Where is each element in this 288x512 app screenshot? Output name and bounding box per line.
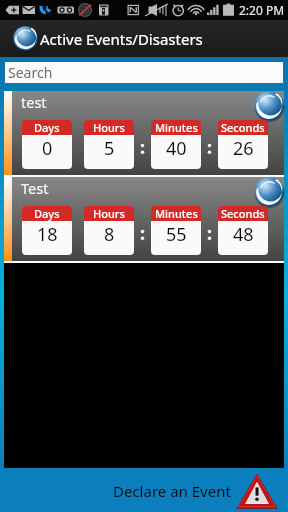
staticText: 0 <box>42 136 53 161</box>
staticText: Active Events/Disasters <box>40 29 203 49</box>
other: Declare an Event <box>236 473 278 509</box>
staticText: 26 <box>233 136 254 161</box>
button[interactable]: Search <box>4 61 284 84</box>
staticText: Test <box>21 178 49 198</box>
staticText: Search <box>8 63 53 82</box>
staticText: 5 <box>104 136 115 161</box>
staticText: Days <box>34 120 60 135</box>
staticText: Seconds <box>221 206 265 221</box>
staticText: 48 <box>233 222 254 247</box>
staticText: 2:20 PM <box>239 2 285 18</box>
staticText: 18 <box>37 222 58 247</box>
staticText: 8 <box>104 222 115 247</box>
button[interactable]: test <box>4 91 284 175</box>
button[interactable]: Declare an Event <box>113 473 278 509</box>
staticText: Hours <box>93 120 125 135</box>
staticText: Days <box>34 206 60 221</box>
staticText: Minutes <box>155 206 198 221</box>
staticText: Minutes <box>155 120 198 135</box>
button[interactable]: Test <box>4 177 284 261</box>
staticText: Hours <box>93 206 125 221</box>
staticText: 40 <box>166 136 187 161</box>
staticText: Declare an Event <box>113 481 231 501</box>
staticText: Seconds <box>221 120 265 135</box>
staticText: 55 <box>166 222 187 247</box>
staticText: test <box>21 92 47 112</box>
